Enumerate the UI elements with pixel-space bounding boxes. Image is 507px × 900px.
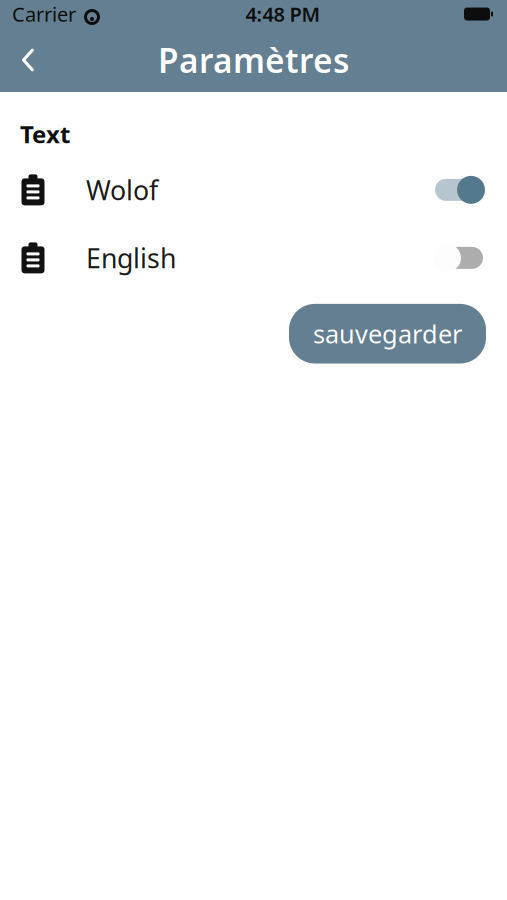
staticText: Paramètres: [158, 38, 349, 82]
button[interactable]: Back: [6, 38, 50, 82]
staticText: sauvegarder: [313, 317, 462, 350]
button[interactable]: English: [0, 230, 507, 286]
staticText: Carrier: [12, 1, 76, 27]
staticText: English: [86, 240, 176, 276]
staticText: Wolof: [86, 172, 158, 208]
button[interactable]: Wolof: [0, 162, 507, 218]
button[interactable]: sauvegarder: [289, 304, 486, 363]
staticText: Text: [20, 118, 70, 150]
staticText: 4:48 PM: [245, 1, 320, 27]
